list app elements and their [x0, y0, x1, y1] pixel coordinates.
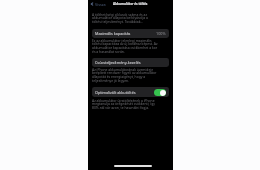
- staticText: Az iPhone akkumulátorának üzemideje beép…: [92, 67, 158, 83]
- button[interactable]: Vissza: [90, 1, 106, 7]
- staticText: 100%: [156, 31, 166, 36]
- staticText: Maximális kapacitás: [95, 31, 131, 36]
- staticText: Az akkumulátor újratöltésének a iPhone m…: [92, 98, 158, 110]
- staticText: Optimalizált akkutöltés: [95, 90, 136, 95]
- button[interactable]: Optimalizált akkutöltés: [92, 87, 169, 97]
- staticText: Vissza: [95, 2, 106, 7]
- button[interactable]: Csúcsteljesítmény-kezelés: [92, 58, 169, 67]
- staticText: Ez az akkumulátor jelenlegi maximális tö…: [92, 38, 158, 54]
- staticText: Csúcsteljesítmény-kezelés: [95, 60, 141, 65]
- button[interactable]: Maximális kapacitás: [92, 29, 169, 38]
- button[interactable]: Optimalizált akkutöltés kapcsoló: [154, 89, 166, 96]
- staticText: A tölthetőségi ciklusok száma és az akku…: [92, 12, 158, 24]
- staticText: Akkumulátor és töltés: [113, 2, 148, 6]
